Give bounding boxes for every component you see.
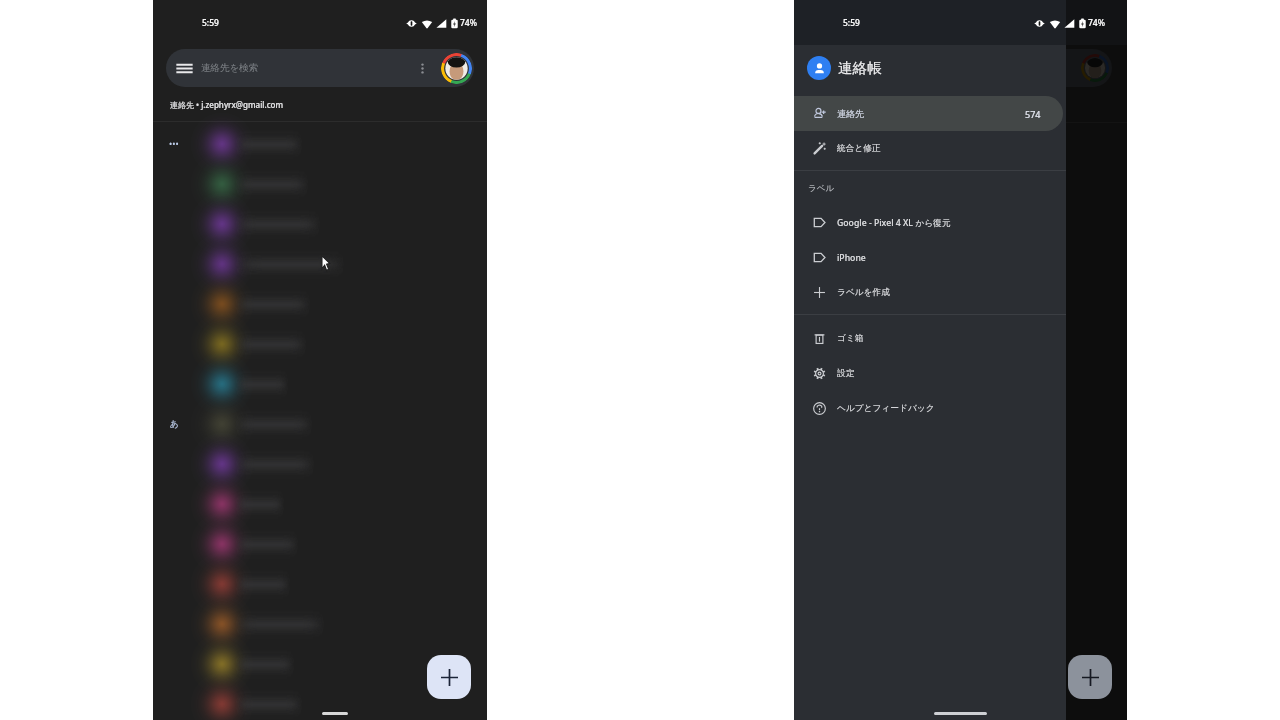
button[interactable] (153, 284, 487, 324)
staticText: 574 (1025, 108, 1041, 120)
other: Menu (176, 60, 193, 77)
button[interactable]: 連絡先 (794, 96, 1063, 131)
button[interactable]: ゴミ箱 (794, 321, 1066, 356)
staticText: ゴミ箱 (837, 333, 864, 344)
button[interactable]: 設定 (794, 356, 1066, 391)
staticText: ラベルを作成 (837, 287, 890, 298)
staticText: 連絡帳 (838, 59, 882, 77)
button[interactable] (153, 684, 487, 720)
button[interactable] (153, 364, 487, 404)
button[interactable]: ••• (153, 124, 487, 164)
button[interactable] (153, 484, 487, 524)
button[interactable]: 統合と修正 (794, 131, 1066, 166)
staticText: 設定 (837, 368, 855, 379)
button[interactable]: Create contact (427, 655, 471, 699)
button[interactable]: Google - Pixel 4 XL から復元 (794, 205, 1066, 240)
button[interactable]: Account (1081, 54, 1109, 82)
button[interactable]: ラベルを作成 (794, 275, 1066, 310)
button[interactable] (153, 244, 487, 284)
other: More options (416, 62, 429, 75)
button[interactable]: Menu (166, 49, 474, 87)
staticText: 5:59 (202, 17, 219, 29)
button[interactable] (153, 204, 487, 244)
button[interactable]: ヘルプとフィードバック (794, 391, 1066, 426)
button[interactable] (153, 524, 487, 564)
button[interactable] (153, 324, 487, 364)
staticText: 統合と修正 (837, 143, 881, 154)
staticText: ヘルプとフィードバック (837, 403, 935, 414)
staticText: あ (170, 419, 179, 430)
button[interactable] (153, 644, 487, 684)
button[interactable]: Account (441, 53, 472, 84)
button[interactable] (153, 564, 487, 604)
button[interactable]: あ (153, 404, 487, 444)
staticText: 連絡先 • j.zephyrx@gmail.com (170, 99, 284, 110)
staticText: 5:59 (843, 17, 860, 29)
button[interactable] (153, 604, 487, 644)
staticText: iPhone (837, 252, 866, 264)
staticText: Google - Pixel 4 XL から復元 (837, 217, 951, 229)
staticText: 連絡先を検索 (201, 62, 259, 74)
staticText: 74% (460, 17, 477, 29)
button[interactable]: iPhone (794, 240, 1066, 275)
staticText: 74% (1088, 17, 1105, 29)
staticText: 連絡先 (837, 108, 864, 119)
staticText: ラベル (808, 183, 835, 194)
button[interactable] (153, 444, 487, 484)
staticText: ••• (169, 138, 179, 150)
button[interactable]: Create contact (1068, 655, 1112, 699)
button[interactable] (153, 164, 487, 204)
